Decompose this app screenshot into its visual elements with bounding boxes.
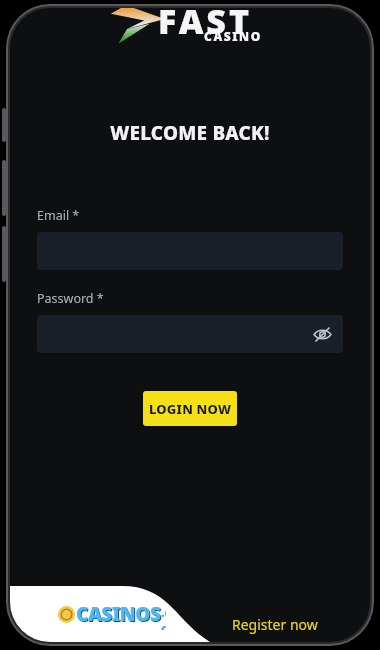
- button[interactable]: LOGIN NOW: [143, 391, 237, 426]
- staticText: WELCOME BACK!: [110, 120, 270, 146]
- staticText: CASINO: [204, 28, 262, 44]
- button[interactable]: Show password: [37, 315, 343, 353]
- button[interactable]: Show password: [307, 319, 337, 349]
- staticText: Password *: [37, 290, 104, 307]
- staticText: LOGIN NOW: [149, 400, 232, 418]
- button[interactable]: Register now: [232, 615, 318, 634]
- other: Casinos.cc: [58, 601, 166, 627]
- staticText: .cc: [161, 604, 166, 630]
- staticText: FAST: [158, 8, 253, 44]
- button[interactable]: Casinos.cc: [10, 586, 210, 642]
- staticText: CASINOS: [76, 601, 161, 627]
- staticText: Email *: [37, 207, 80, 224]
- staticText: CASINOS: [77, 602, 162, 628]
- other: Fast Casino: [100, 8, 280, 52]
- staticText: Register now: [232, 615, 318, 634]
